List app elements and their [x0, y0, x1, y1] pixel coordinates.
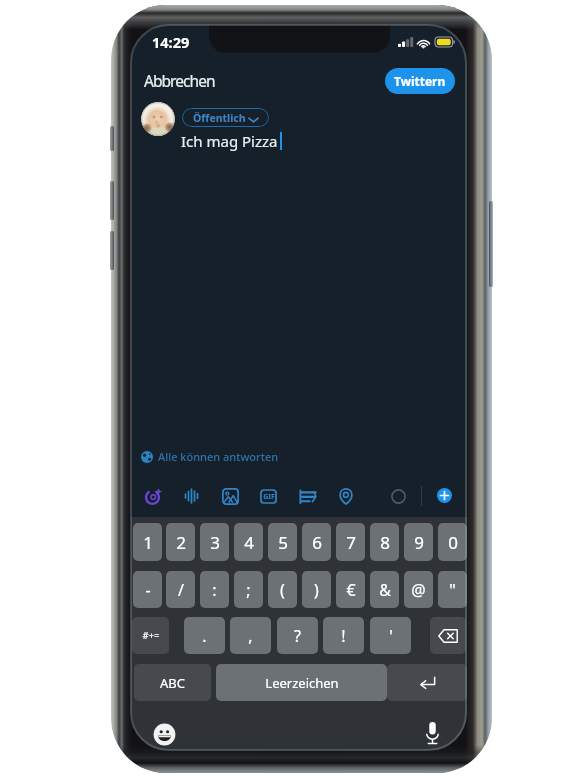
staticText: ": [449, 579, 456, 601]
button[interactable]: 0: [438, 523, 467, 561]
button[interactable]: Zeichenanzahl: [391, 489, 406, 504]
staticText: 4: [244, 531, 254, 554]
button[interactable]: GIF: [260, 488, 277, 505]
button[interactable]: &: [370, 571, 399, 608]
staticText: Leerzeichen: [265, 674, 339, 692]
staticText: 0: [448, 531, 458, 554]
button[interactable]: #+=: [132, 617, 169, 654]
staticText: 1: [143, 531, 153, 554]
button[interactable]: Standort: [339, 488, 353, 505]
button[interactable]: 8: [370, 523, 399, 561]
button[interactable]: Profilbild: [141, 102, 175, 136]
staticText: Abbrechen: [144, 70, 215, 91]
staticText: GIF: [263, 492, 275, 502]
button[interactable]: !: [323, 617, 364, 654]
staticText: .: [202, 625, 207, 647]
button[interactable]: Zeilenumbruch: [387, 664, 467, 701]
button[interactable]: 5: [268, 523, 297, 561]
button[interactable]: Löschen: [430, 617, 466, 654]
button[interactable]: Emoji: [153, 723, 176, 746]
button[interactable]: Abbrechen: [137, 65, 222, 96]
button[interactable]: 1: [133, 523, 162, 561]
staticText: 8: [380, 531, 390, 554]
button[interactable]: ?: [277, 617, 318, 654]
button[interactable]: /: [166, 571, 195, 608]
staticText: 2: [176, 531, 186, 554]
staticText: ,: [248, 625, 253, 647]
button[interactable]: 3: [200, 523, 229, 561]
button[interactable]: :: [200, 571, 229, 608]
staticText: Twittern: [394, 73, 446, 89]
button[interactable]: Öffentlich: [182, 108, 269, 127]
staticText: 7: [346, 531, 356, 554]
staticText: Alle können antworten: [158, 449, 279, 464]
button[interactable]: .: [184, 617, 225, 654]
staticText: &: [379, 579, 391, 601]
button[interactable]: ;: [234, 571, 263, 608]
staticText: 5: [278, 531, 288, 554]
button[interactable]: ': [370, 617, 411, 654]
staticText: /: [178, 579, 184, 601]
staticText: :: [212, 579, 217, 601]
button[interactable]: Twittern: [385, 68, 455, 94]
button[interactable]: Weiteren Tweet hinzufügen: [437, 488, 452, 503]
button[interactable]: ": [438, 571, 467, 608]
staticText: ?: [294, 625, 301, 647]
staticText: ;: [246, 579, 251, 601]
button[interactable]: Leerzeichen: [216, 664, 387, 701]
staticText: -: [145, 579, 151, 601]
staticText: 14:29: [152, 32, 190, 52]
button[interactable]: 9: [404, 523, 433, 561]
staticText: #+=: [142, 629, 160, 642]
button[interactable]: €: [336, 571, 365, 608]
staticText: Öffentlich: [193, 111, 246, 125]
button[interactable]: -: [133, 571, 162, 608]
button[interactable]: ABC: [134, 664, 211, 701]
staticText: (: [280, 579, 285, 601]
button[interactable]: Bild: [222, 488, 239, 505]
button[interactable]: Diktieren: [424, 721, 441, 745]
staticText: ): [314, 579, 319, 601]
button[interactable]: 4: [234, 523, 263, 561]
button[interactable]: ): [302, 571, 331, 608]
staticText: 9: [414, 531, 424, 554]
staticText: Ich mag Pizza: [181, 131, 278, 151]
staticText: 6: [312, 531, 322, 554]
button[interactable]: Umfrage: [299, 488, 316, 505]
staticText: @: [411, 579, 426, 601]
button[interactable]: 6: [302, 523, 331, 561]
button[interactable]: Audio: [184, 488, 199, 504]
button[interactable]: @: [404, 571, 433, 608]
staticText: ': [389, 625, 393, 647]
button[interactable]: ,: [230, 617, 271, 654]
staticText: 3: [210, 531, 220, 554]
button[interactable]: Grok: [145, 488, 162, 505]
button[interactable]: Alle können antworten: [136, 444, 279, 469]
button[interactable]: 7: [336, 523, 365, 561]
button[interactable]: (: [268, 571, 297, 608]
button[interactable]: 2: [166, 523, 195, 561]
staticText: !: [341, 625, 346, 647]
staticText: ABC: [160, 674, 185, 692]
staticText: €: [346, 579, 356, 601]
